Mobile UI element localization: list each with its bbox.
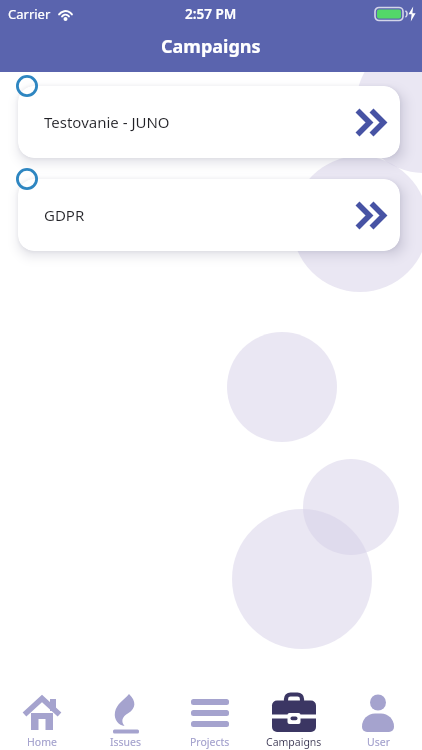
button[interactable]: Testovanie - JUNO: [18, 86, 400, 158]
button[interactable]: GDPR: [18, 179, 400, 251]
staticText: Issues: [110, 735, 142, 749]
staticText: Carrier: [8, 5, 51, 23]
staticText: Projects: [190, 735, 230, 749]
button[interactable]: Projects: [168, 680, 252, 750]
button[interactable]: Issues: [84, 680, 168, 750]
staticText: User: [367, 735, 390, 749]
staticText: GDPR: [44, 205, 85, 225]
staticText: Home: [27, 735, 57, 749]
staticText: Campaigns: [161, 34, 261, 59]
button[interactable]: Home: [0, 680, 84, 750]
button[interactable]: Campaigns: [252, 680, 336, 750]
staticText: Testovanie - JUNO: [44, 112, 170, 132]
button[interactable]: User: [336, 680, 420, 750]
staticText: 2:57 PM: [185, 5, 237, 23]
staticText: Campaigns: [266, 735, 322, 749]
